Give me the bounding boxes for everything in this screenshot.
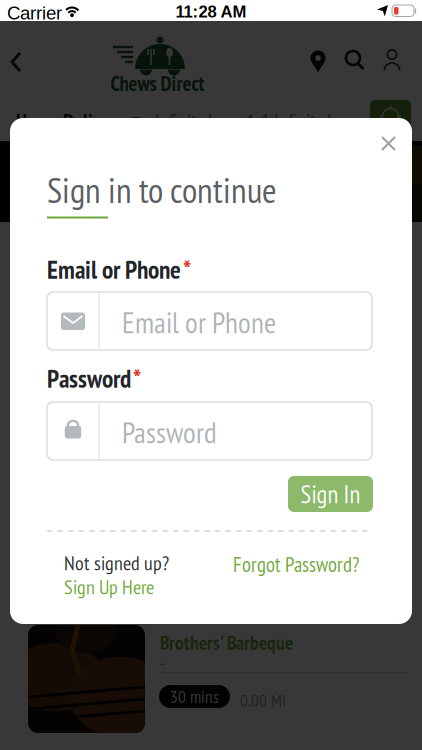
button[interactable]: Home Delivery: [16, 108, 143, 135]
staticText: 30 mins: [170, 685, 219, 708]
button[interactable]: Back: [0, 0, 32, 40]
button[interactable]: Close: [382, 137, 395, 150]
button[interactable]: Locate me: [370, 100, 411, 138]
staticText: Carrier: [7, 2, 62, 23]
staticText: Sign Up Here: [64, 574, 154, 600]
button[interactable]: Brothers' Barbeque: [22, 620, 422, 750]
staticText: Not signed up?: [64, 550, 169, 576]
button[interactable]: Sign In: [288, 476, 373, 512]
staticText: 0.00 MI: [240, 689, 286, 711]
staticText: 11:28 AM: [175, 2, 246, 21]
button[interactable]: Sign Up Here: [64, 574, 154, 600]
button[interactable]: Search: [0, 0, 30, 40]
staticText: Sign In: [300, 478, 360, 510]
button[interactable]: Location: [0, 0, 30, 40]
staticText: *: [133, 362, 141, 395]
staticText: -: [160, 652, 165, 674]
staticText: Password: [122, 413, 217, 451]
staticText: Email or Phone: [122, 303, 276, 341]
staticText: Sign in to continue: [47, 167, 277, 213]
staticText: *: [183, 253, 191, 286]
button[interactable]: Profile: [0, 0, 30, 40]
staticText: Email or Phone: [47, 253, 181, 286]
staticText: Chews Direct: [110, 70, 204, 97]
staticText: Password: [47, 362, 131, 395]
staticText: Forgot Password?: [233, 551, 359, 578]
staticText: Infinite Loop 1, 1 Infinite Lo: [155, 108, 343, 134]
staticText: Home Delivery: [16, 108, 124, 135]
staticText: Brothers' Barbeque: [160, 630, 293, 655]
button[interactable]: Forgot Password?: [184, 551, 359, 578]
